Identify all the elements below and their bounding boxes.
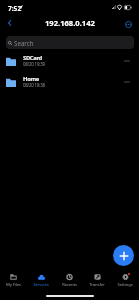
button[interactable]: More options xyxy=(121,17,135,31)
button[interactable]: SDCard xyxy=(0,49,139,70)
button[interactable]: Services xyxy=(27,270,55,292)
button[interactable]: Back xyxy=(2,16,16,30)
button[interactable]: Recents xyxy=(55,270,83,292)
staticText: My Files xyxy=(6,282,21,288)
staticText: Home xyxy=(23,75,39,83)
staticText: Settings xyxy=(117,282,133,288)
staticText: 7:52 xyxy=(8,4,22,13)
button[interactable]: Search xyxy=(6,36,134,49)
staticText: Search xyxy=(14,39,34,47)
button[interactable]: Transfer xyxy=(83,270,111,292)
button[interactable]: Item options xyxy=(119,53,135,69)
button[interactable]: My Files xyxy=(0,270,27,292)
button[interactable]: Home xyxy=(0,70,139,91)
staticText: Transfer xyxy=(89,282,105,288)
staticText: 192.168.0.142 xyxy=(45,18,95,28)
staticText: Services xyxy=(33,282,49,288)
staticText: Recents xyxy=(62,282,77,288)
staticText: 08/20 19:39 xyxy=(23,61,45,67)
staticText: SDCard xyxy=(23,54,42,62)
staticText: 08/20 18:38 xyxy=(23,82,45,88)
button[interactable]: Settings xyxy=(111,270,139,292)
button[interactable]: Add xyxy=(113,245,134,266)
button[interactable]: Item options xyxy=(119,74,135,90)
